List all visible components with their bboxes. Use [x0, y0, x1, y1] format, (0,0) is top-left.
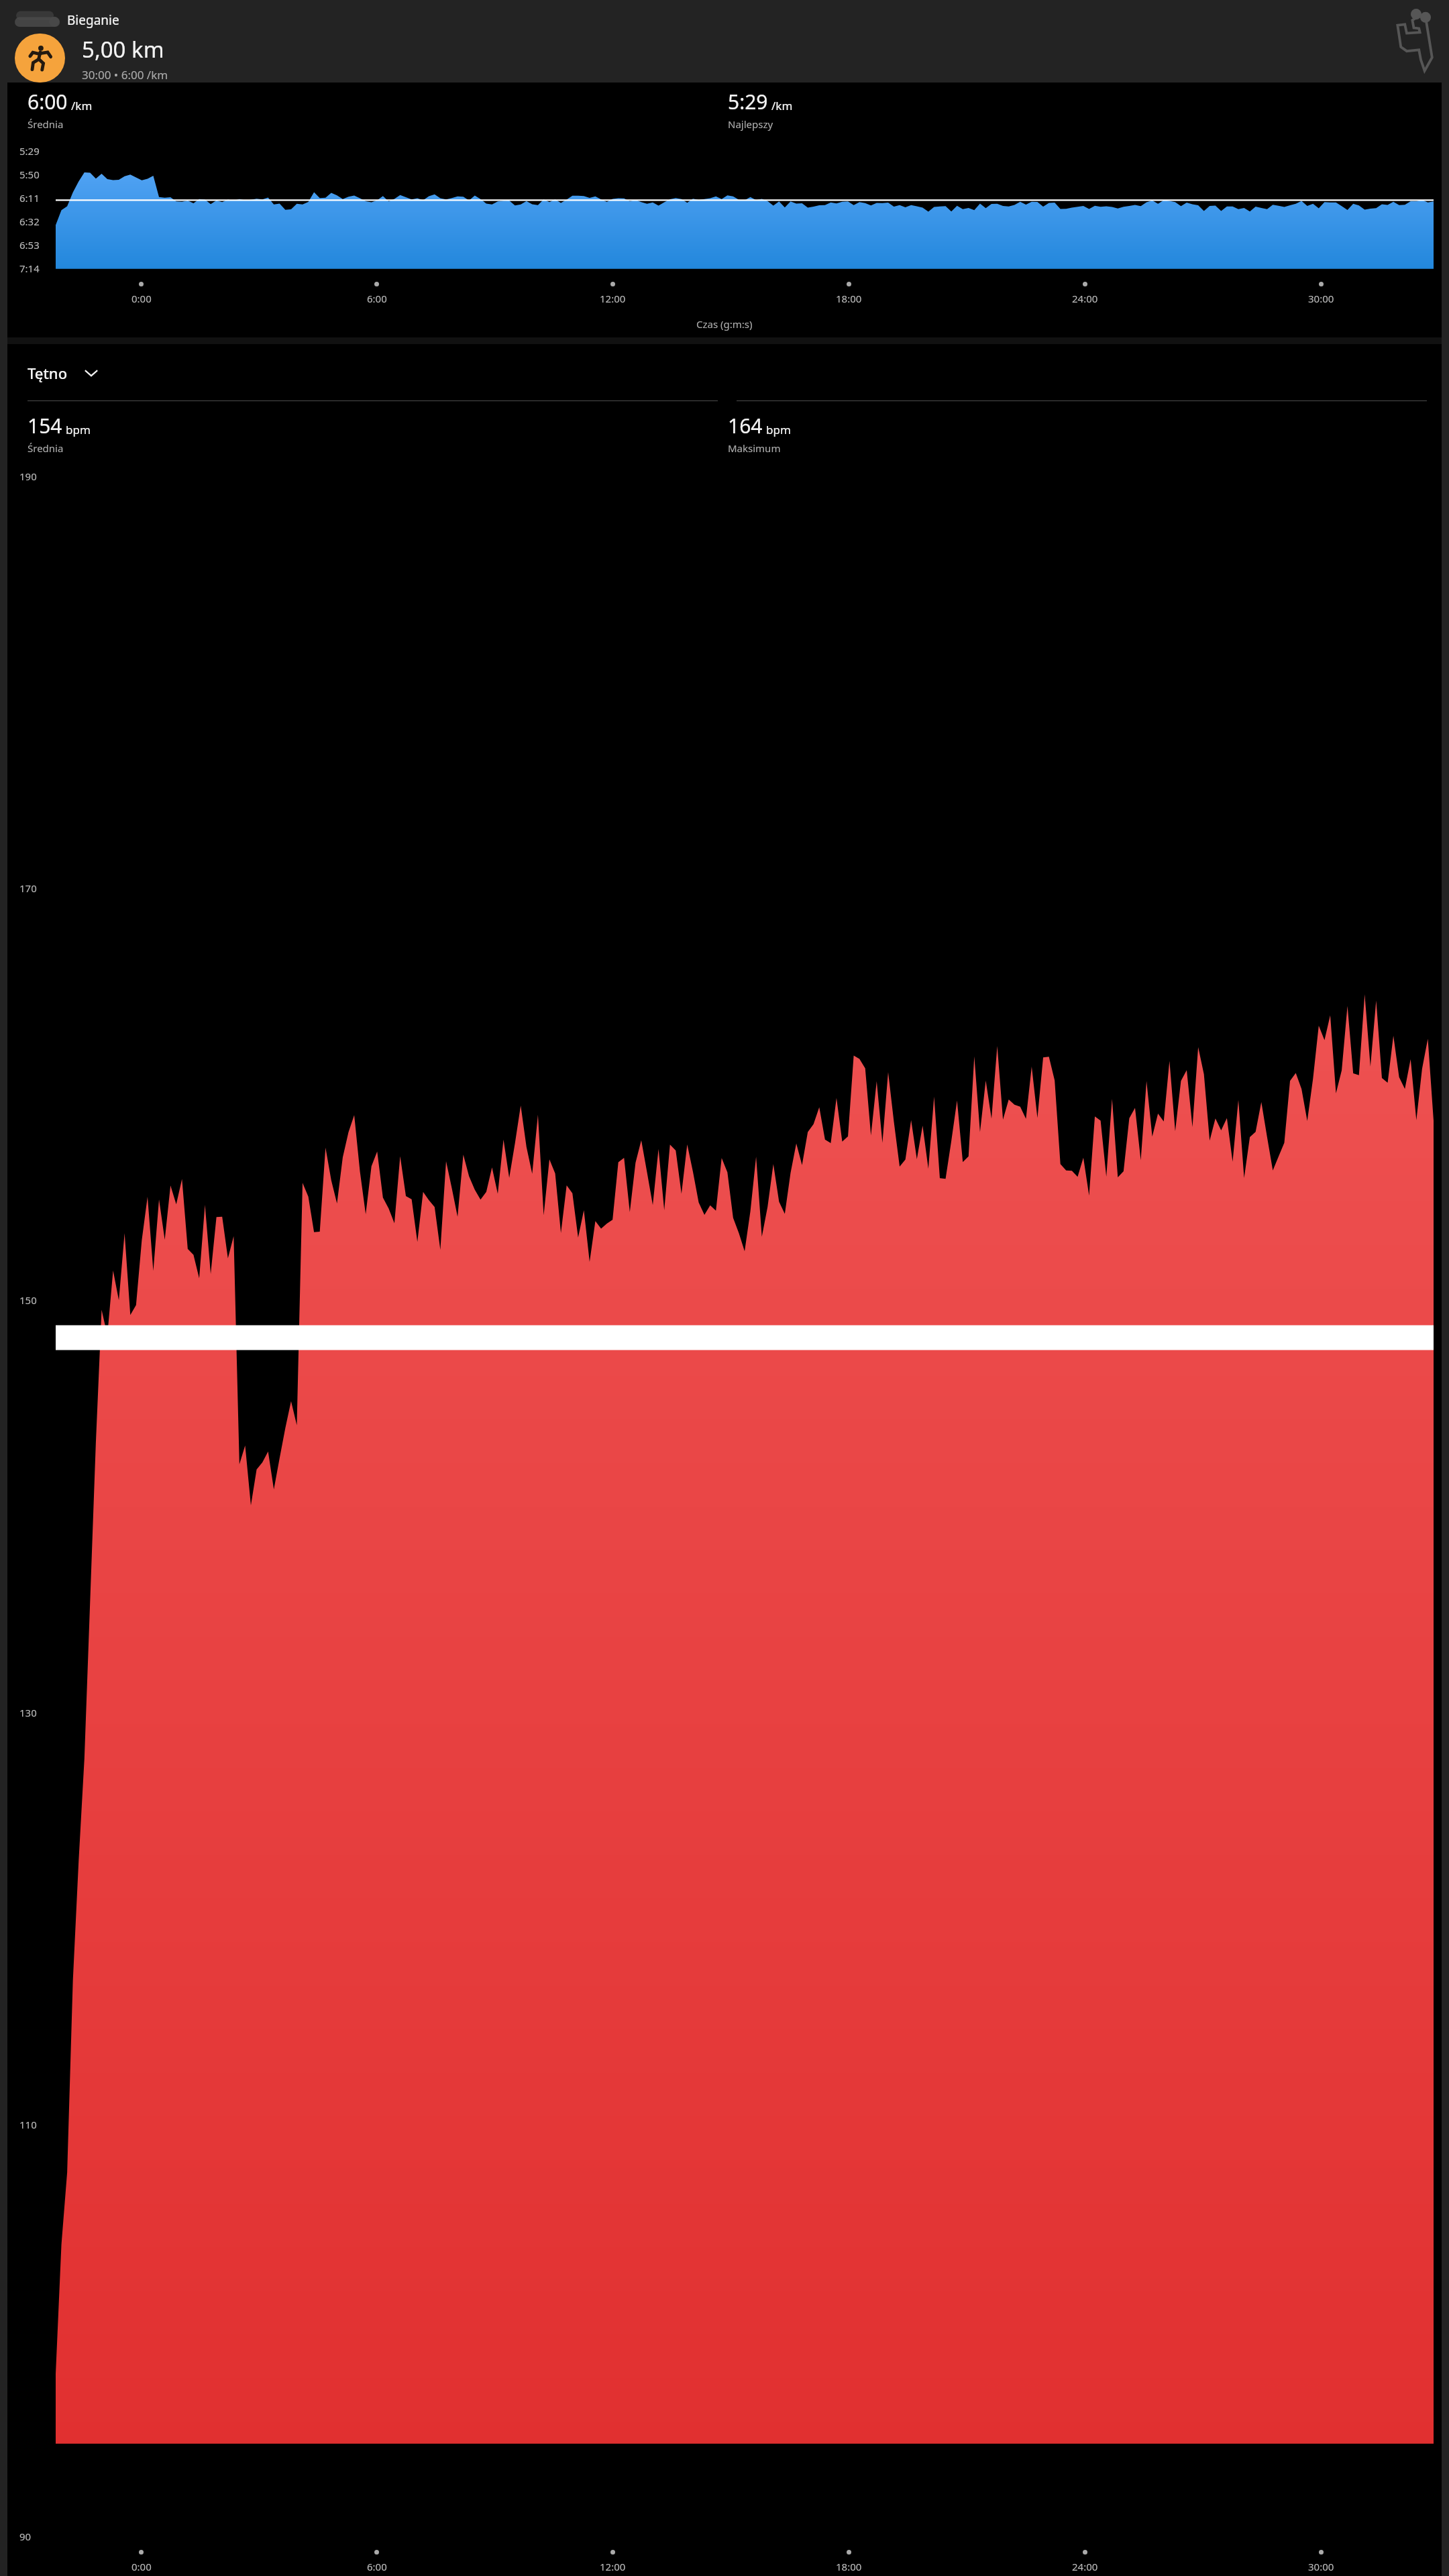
staticText: 30:00 • 6:00 /km	[82, 67, 168, 83]
staticText: 12:00	[600, 292, 626, 305]
staticText: 6:00	[28, 88, 68, 115]
staticText: 6:00	[367, 292, 387, 305]
staticText: 5:29	[728, 88, 768, 115]
staticText: Czas (g:m:s)	[696, 317, 753, 331]
staticText: 30:00	[1308, 2560, 1334, 2573]
staticText: 18:00	[836, 292, 862, 305]
staticText: 30:00	[1308, 292, 1334, 305]
staticText: 0:00	[131, 292, 152, 305]
staticText: 110	[19, 2118, 37, 2131]
staticText: Bieganie	[67, 11, 119, 29]
staticText: 7:14	[19, 262, 40, 275]
staticText: 6:53	[19, 238, 40, 252]
staticText: 6:11	[19, 191, 40, 205]
staticText: 170	[19, 881, 37, 895]
staticText: bpm	[766, 422, 791, 437]
staticText: 154	[28, 412, 62, 439]
staticText: bpm	[66, 422, 91, 437]
staticText: /km	[71, 98, 93, 113]
staticText: 5:50	[19, 168, 40, 181]
staticText: 5:29	[19, 144, 40, 158]
staticText: 90	[19, 2530, 32, 2543]
staticText: 150	[19, 1293, 37, 1307]
staticText: 164	[728, 412, 763, 439]
staticText: 0:00	[131, 2560, 152, 2573]
other: Expand heart rate	[83, 364, 100, 382]
staticText: Najlepszy	[728, 117, 773, 131]
button[interactable]: Route map	[1393, 9, 1440, 72]
staticText: Maksimum	[728, 441, 781, 455]
staticText: Średnia	[28, 441, 64, 455]
staticText: 18:00	[836, 2560, 862, 2573]
staticText: Średnia	[28, 117, 64, 131]
staticText: 130	[19, 1706, 37, 1719]
staticText: 24:00	[1072, 292, 1098, 305]
staticText: Tętno	[28, 363, 68, 383]
staticText: 12:00	[600, 2560, 626, 2573]
staticText: /km	[771, 98, 793, 113]
staticText: 6:00	[367, 2560, 387, 2573]
staticText: 6:32	[19, 215, 40, 228]
button[interactable]: Running activity	[15, 34, 65, 83]
staticText: 190	[19, 470, 37, 483]
button[interactable]: Tętno	[28, 363, 100, 383]
staticText: 24:00	[1072, 2560, 1098, 2573]
staticText: 5,00 km	[82, 34, 164, 64]
